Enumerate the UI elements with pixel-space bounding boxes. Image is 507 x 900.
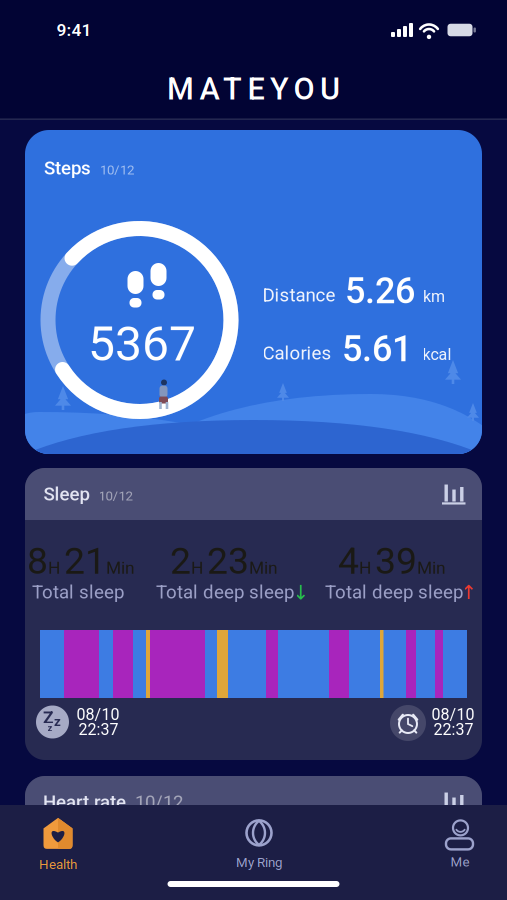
staticText: Z [43,708,54,727]
button[interactable]: Sleep [25,468,482,760]
staticText: 08/10 [431,705,474,724]
staticText: km [423,287,445,306]
staticText: Steps [44,157,91,179]
staticText: MATEYOU [167,71,340,106]
staticText: 10/12 [98,488,132,503]
staticText: Heart rate [43,791,126,813]
staticText: Total sleep [32,581,124,603]
staticText: Distance [262,284,335,306]
staticText: Total deep sleep [325,581,463,603]
staticText: 5.26 [345,270,415,311]
staticText: Sleep [43,483,89,505]
staticText: Me [450,854,469,870]
staticText: Calories [262,342,331,364]
staticText: 8H 21Min [27,540,135,582]
staticText: 10/12 [135,791,183,813]
staticText: 10/12 [100,162,134,177]
staticText: 5.61 [342,328,412,369]
staticText: Health [39,857,77,872]
staticText: Total deep sleep [156,581,294,603]
staticText: kcal [422,345,451,364]
staticText: 2H 23Min [170,540,278,582]
staticText: ↓ [292,581,309,604]
staticText: z [54,714,61,729]
staticText: z [47,723,52,733]
staticText: 22:37 [433,720,473,739]
staticText: 22:37 [78,720,118,739]
button[interactable]: Steps [25,130,482,454]
button[interactable]: Health [8,814,108,876]
button[interactable]: Heart rate [25,776,482,896]
staticText: My Ring [236,855,282,870]
staticText: 4H 39Min [338,540,446,582]
staticText: 5367 [88,317,196,371]
staticText: 08/10 [76,705,119,724]
button[interactable]: Me [410,814,507,876]
staticText: ↑ [460,581,477,604]
staticText: 9:41 [56,20,91,40]
button[interactable]: My Ring [209,814,309,876]
